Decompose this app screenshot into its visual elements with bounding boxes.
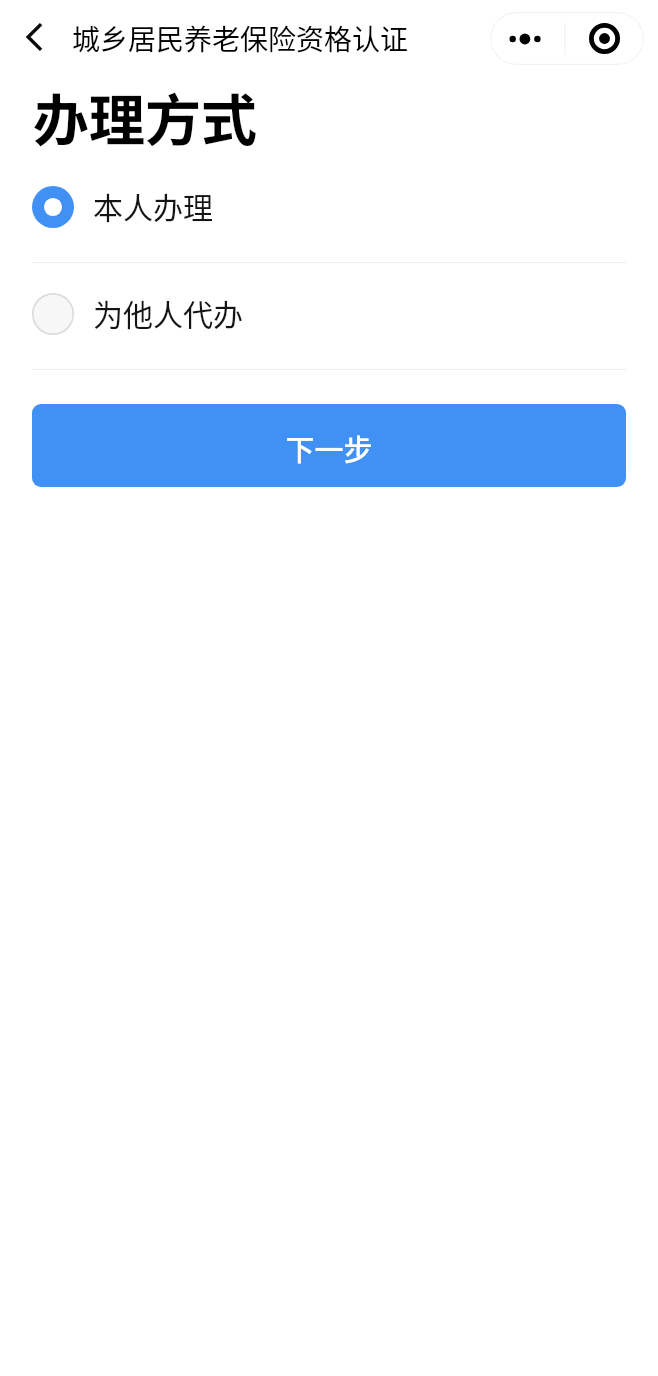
button[interactable]: 下一步 bbox=[32, 404, 626, 487]
staticText: 下一步 bbox=[285, 427, 373, 469]
button[interactable]: 为他人代办 bbox=[0, 262, 658, 369]
staticText: 办理方式 bbox=[33, 76, 257, 157]
button[interactable]: Close mini program bbox=[565, 12, 644, 65]
staticText: 城乡居民养老保险资格认证 bbox=[72, 18, 409, 59]
button[interactable]: Back bbox=[8, 11, 60, 63]
button[interactable]: More options bbox=[490, 12, 565, 65]
button[interactable]: 本人办理 bbox=[0, 155, 658, 262]
staticText: 为他人代办 bbox=[93, 291, 243, 334]
staticText: 本人办理 bbox=[93, 184, 213, 227]
